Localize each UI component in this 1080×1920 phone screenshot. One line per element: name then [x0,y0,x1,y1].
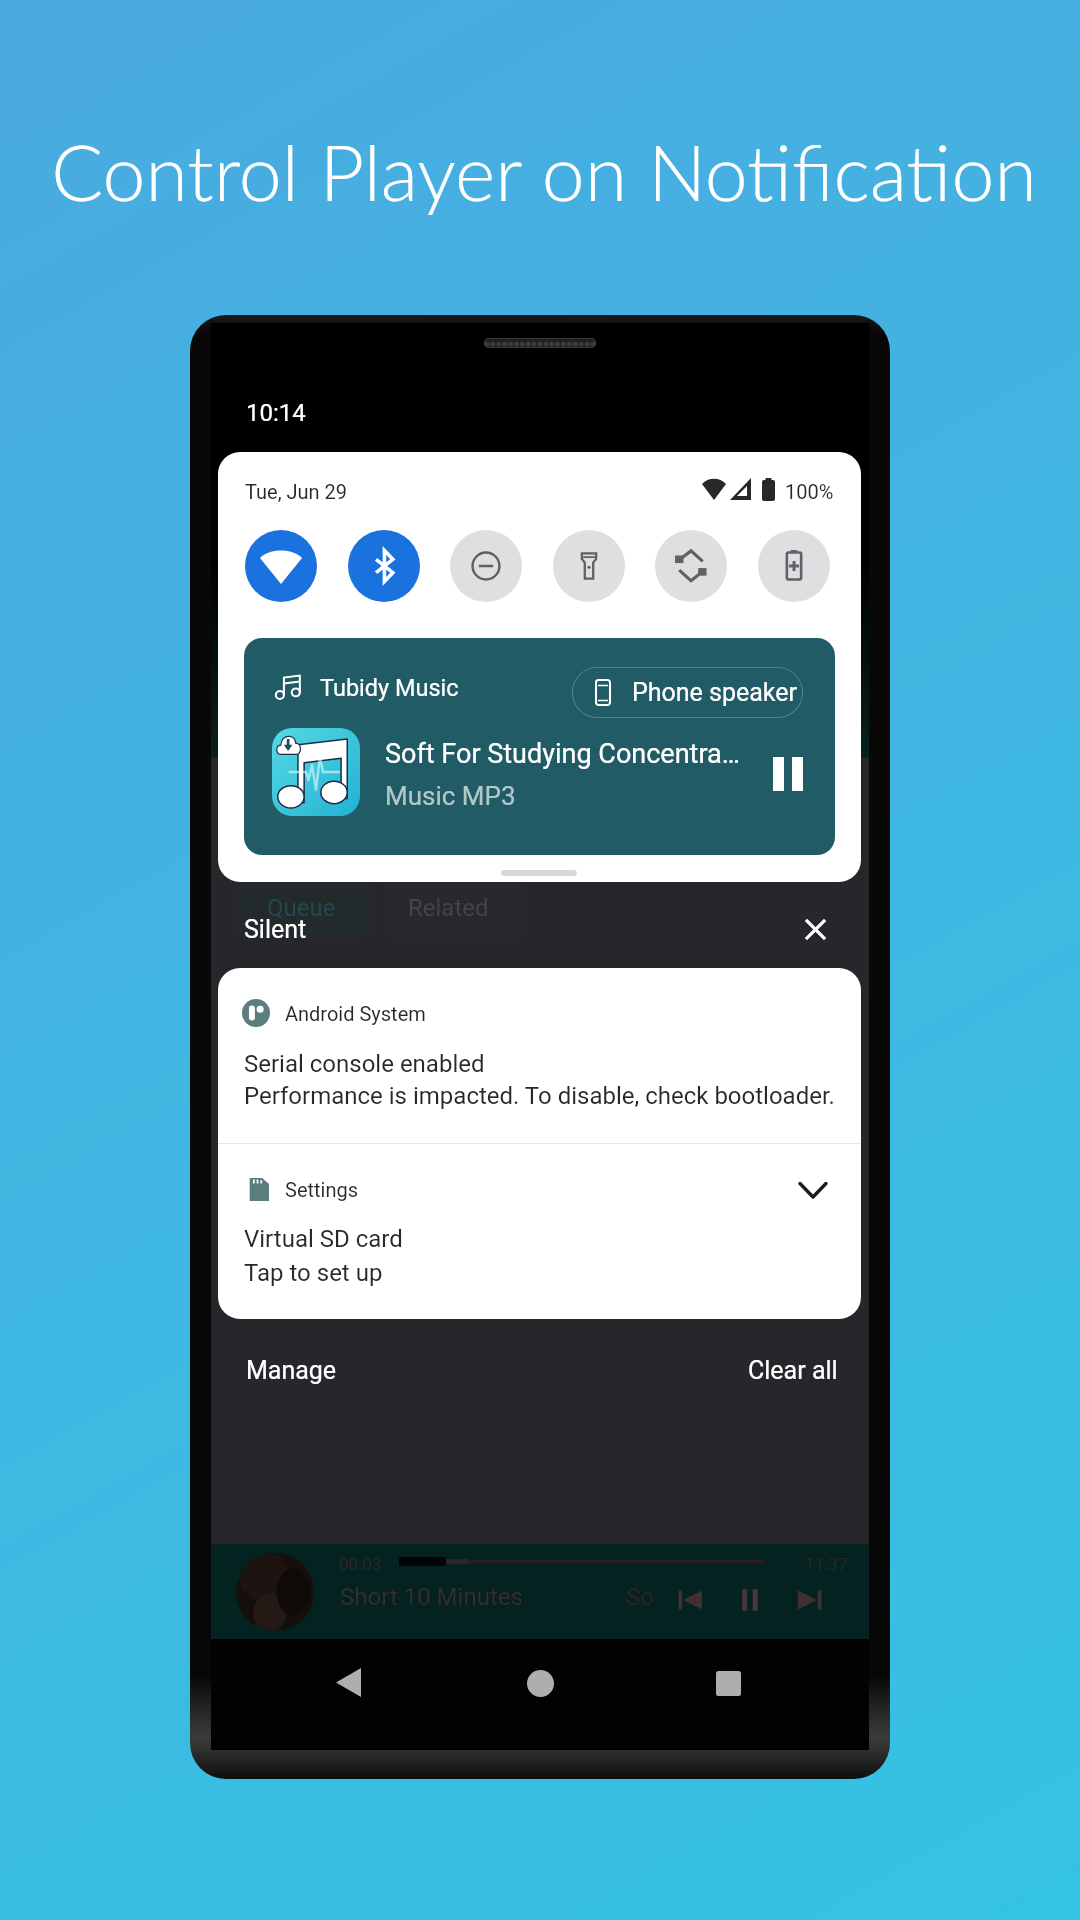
staticText: Tubidy Music [320,674,459,702]
button[interactable]: Back [336,1668,361,1697]
staticText: Short 10 Minutes [340,1583,523,1611]
staticText: 11:37 [805,1554,848,1574]
button[interactable]: Bluetooth [348,530,420,602]
button[interactable]: Wi-Fi [245,530,317,602]
staticText: Tap to set up [244,1259,383,1287]
staticText: Settings [285,1178,359,1201]
staticText: Android System [285,1002,426,1025]
staticText: Virtual SD card [244,1225,403,1253]
button[interactable]: Expand notification [795,1172,831,1208]
button[interactable]: Recent apps [716,1671,741,1696]
button[interactable]: Do not disturb [450,530,522,602]
staticText: Control Player on Notification [4,125,1080,217]
staticText: 00:03 [339,1554,382,1574]
staticText: 10:14 [246,399,306,427]
staticText: Tue, Jun 29 [245,480,348,503]
button[interactable]: Battery saver [758,530,830,602]
staticText: 100% [785,480,834,503]
button[interactable]: Phone speaker [572,667,803,718]
button[interactable]: Home [527,1670,554,1697]
staticText: Queue [267,894,336,922]
staticText: Serial console enabled [244,1050,485,1078]
button[interactable]: Close notifications [793,907,837,951]
staticText: Soft For Studying Concentra… [385,738,740,770]
staticText: Performance is impacted. To disable, che… [244,1082,835,1110]
staticText: Music MP3 [385,781,516,811]
staticText: Related [408,894,489,922]
button[interactable]: Pause [767,751,808,797]
staticText: Phone speaker [632,678,798,707]
staticText: Silent [244,915,307,944]
button[interactable]: Flashlight [553,530,625,602]
staticText: So [626,1583,654,1611]
button[interactable]: Auto-rotate [655,530,727,602]
